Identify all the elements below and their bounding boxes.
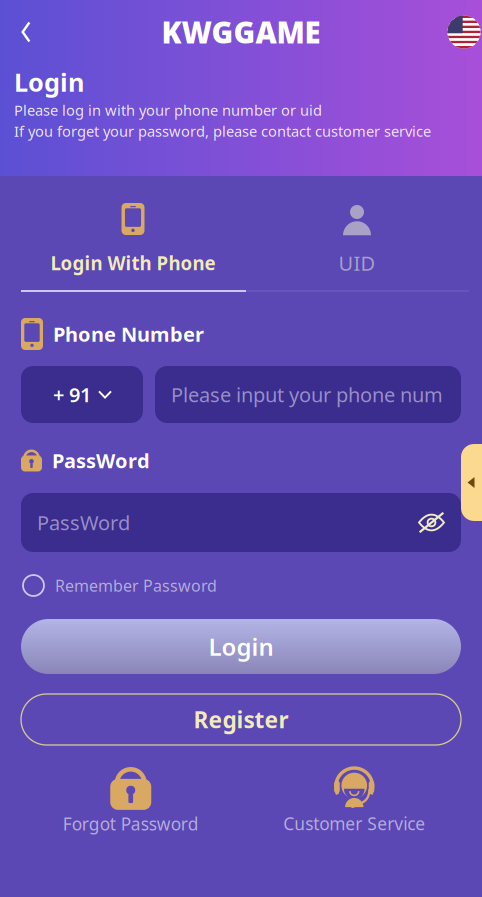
button[interactable]: Forgot Password — [19, 749, 242, 834]
staticText: Login — [14, 65, 84, 99]
staticText: Please input your phone num — [171, 381, 443, 408]
staticText: Remember Password — [55, 575, 217, 596]
staticText: Phone Number — [53, 321, 204, 347]
button[interactable]: Open side menu — [448, 444, 482, 521]
button[interactable]: Remember Password — [0, 552, 482, 597]
staticText: Customer Service — [283, 812, 425, 835]
staticText: Forgot Password — [63, 812, 199, 835]
staticText: Login — [208, 631, 273, 662]
staticText: If you forget your password, please cont… — [14, 121, 431, 141]
staticText: Please log in with your phone number or … — [14, 100, 322, 120]
button[interactable]: + 91 — [21, 366, 143, 423]
staticText: Register — [193, 704, 288, 734]
staticText: KWGGAME — [161, 12, 320, 51]
button[interactable]: Customer Service — [242, 749, 466, 833]
button[interactable]: Please input your phone num — [155, 366, 461, 423]
staticText: UID — [338, 250, 375, 276]
staticText: PassWord — [52, 447, 150, 474]
staticText: Login With Phone — [50, 251, 215, 275]
button[interactable]: Back — [4, 10, 48, 54]
button[interactable]: UID — [245, 176, 469, 290]
button[interactable]: Login With Phone — [21, 176, 245, 290]
button[interactable]: Change language — [446, 10, 482, 54]
button[interactable]: Login — [0, 597, 482, 674]
staticText: + 91 — [53, 381, 91, 408]
button[interactable]: PassWord — [0, 476, 482, 552]
button[interactable]: Register — [0, 674, 482, 745]
staticText: PassWord — [37, 509, 130, 536]
